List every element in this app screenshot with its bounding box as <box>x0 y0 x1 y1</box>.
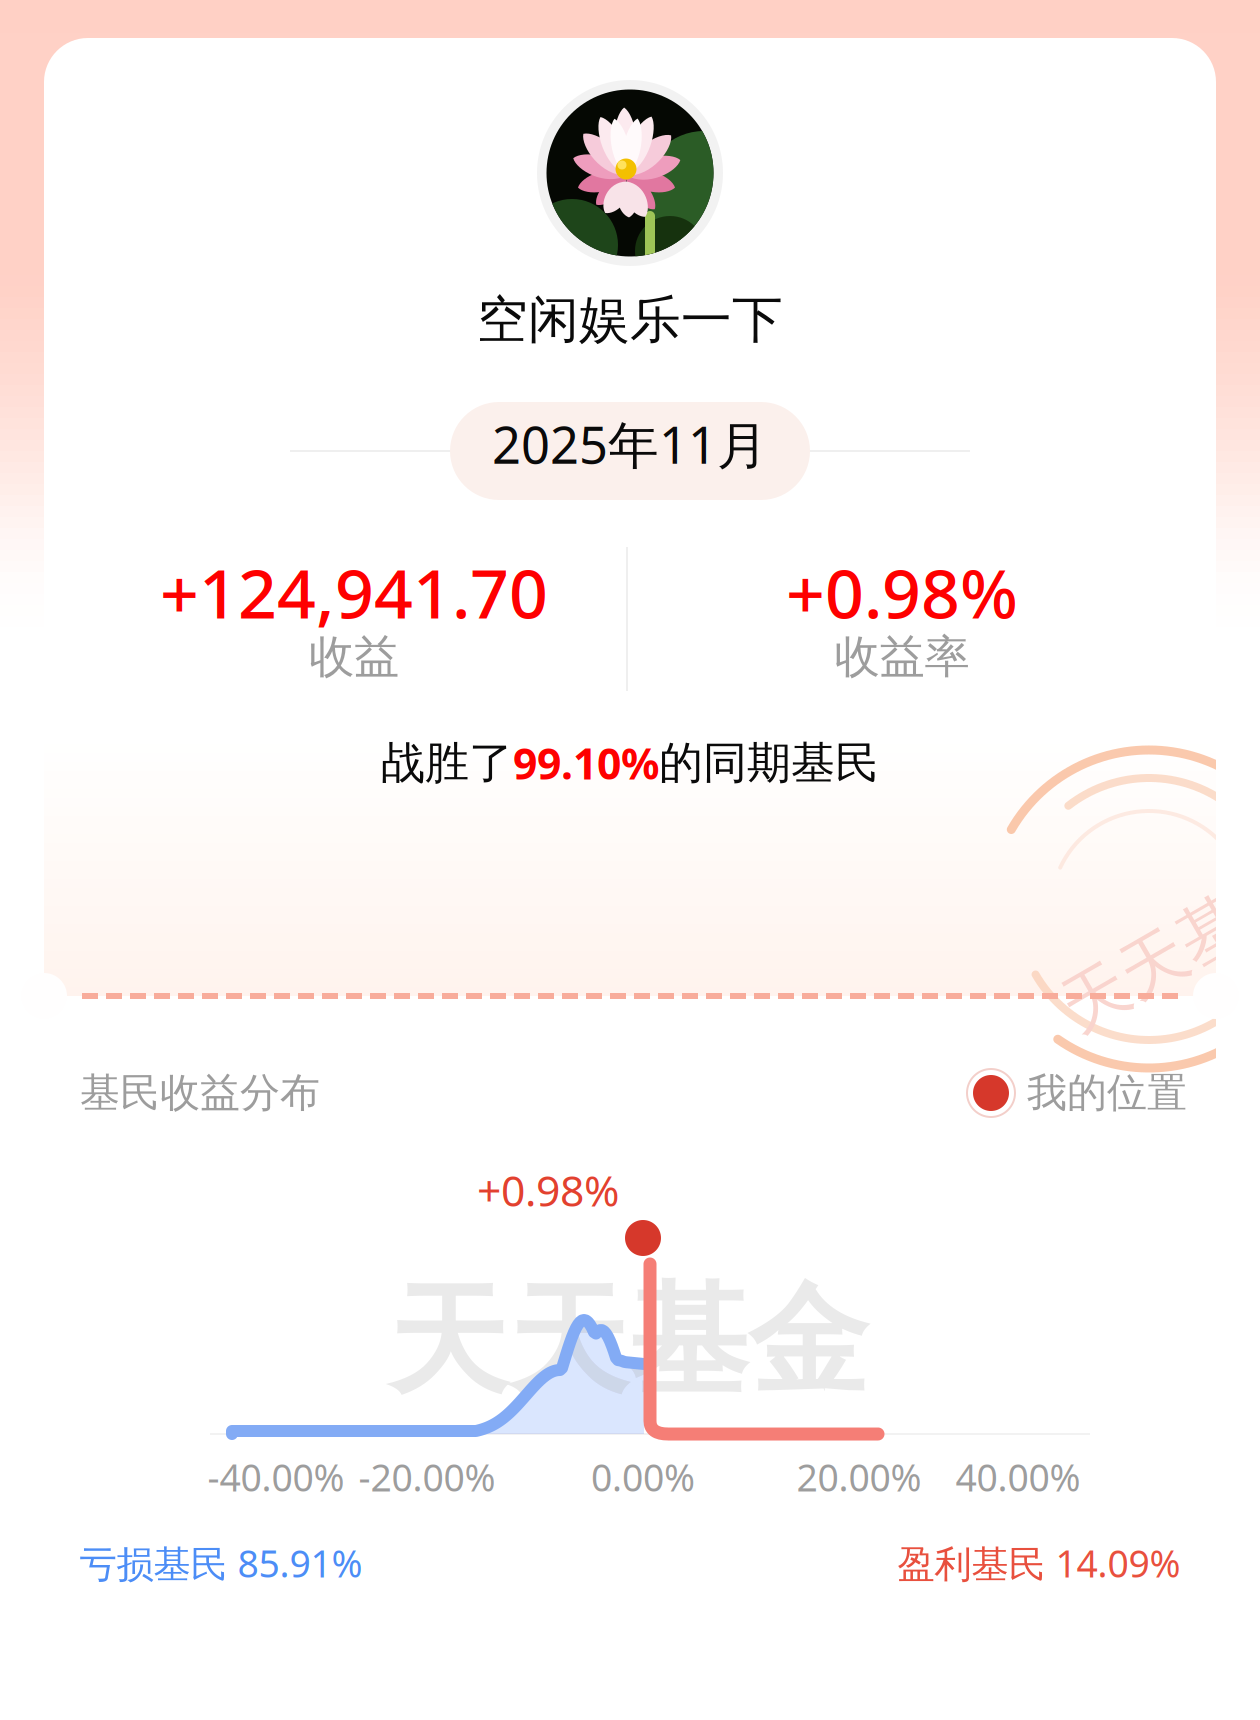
staticText: 收益 <box>309 629 399 685</box>
staticText: +0.98% <box>477 1162 619 1218</box>
staticText: 基民收益分布 <box>80 1068 320 1117</box>
button[interactable]: Profile photo <box>535 78 724 267</box>
button[interactable]: 空闲娱乐一下 <box>477 289 783 351</box>
staticText: 2025年11月 <box>492 410 768 478</box>
staticText: 0.00% <box>591 1452 695 1502</box>
staticText: 99.10% <box>513 735 659 791</box>
staticText: +0.98% <box>786 547 1018 637</box>
staticText: 40.00% <box>955 1452 1080 1502</box>
staticText: +124,941.70 <box>160 547 548 637</box>
staticText: 亏损基民 85.91% <box>79 1538 362 1588</box>
staticText: 空闲娱乐一下 <box>477 289 783 351</box>
staticText: 天天基金 <box>1049 906 1260 988</box>
staticText: 20.00% <box>796 1452 921 1502</box>
staticText: 的同期基民 <box>659 736 879 790</box>
staticText: 我的位置 <box>1027 1068 1187 1117</box>
staticText: 收益率 <box>834 629 969 685</box>
button[interactable]: 2025年11月 <box>290 402 970 500</box>
staticText: -40.00% <box>207 1452 344 1502</box>
staticText: -20.00% <box>358 1452 495 1502</box>
staticText: 天天基金 <box>388 1268 868 1415</box>
staticText: 战胜了 <box>381 736 513 790</box>
staticText: 盈利基民 14.09% <box>897 1538 1180 1588</box>
